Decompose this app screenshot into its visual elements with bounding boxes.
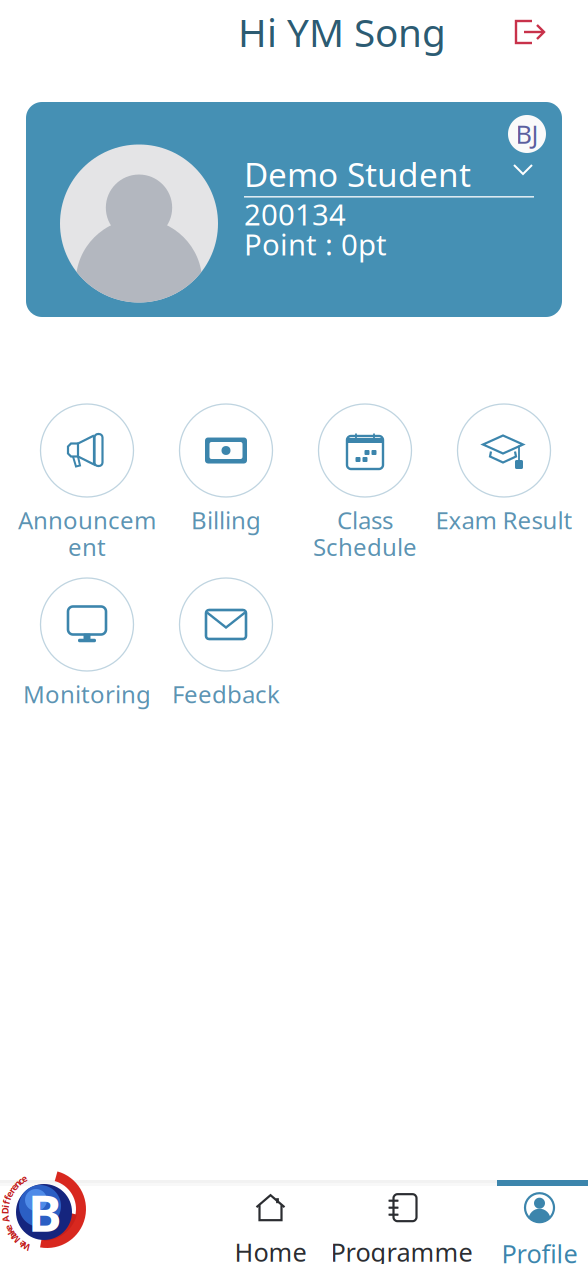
staticText: e (11, 1181, 17, 1193)
button[interactable]: Exam Result (434, 403, 573, 569)
button[interactable]: Home (205, 1180, 336, 1264)
staticText: f (4, 1196, 8, 1208)
button[interactable]: Announcem (17, 403, 156, 569)
staticText: Demo Student (244, 152, 471, 196)
button[interactable]: Feedback (156, 577, 295, 743)
button[interactable]: Programme (336, 1180, 467, 1264)
staticText: M (11, 1232, 20, 1245)
staticText (17, 1235, 19, 1248)
staticText: e (21, 1172, 27, 1185)
button[interactable]: Brand logo (0, 1180, 97, 1258)
staticText: e (6, 1188, 12, 1200)
button[interactable]: Monitoring (17, 577, 156, 743)
staticText: Schedule (313, 531, 417, 563)
staticText: f (6, 1192, 10, 1204)
staticText: c (18, 1175, 23, 1187)
staticText: A (3, 1213, 9, 1225)
staticText: Profile (501, 1237, 577, 1264)
staticText: 200134 (244, 195, 346, 234)
staticText: Exam Result (435, 504, 572, 536)
staticText: Billing (191, 504, 261, 536)
staticText: Class (337, 504, 393, 536)
staticText: Home (234, 1235, 306, 1264)
staticText: Point : 0pt (244, 225, 387, 264)
staticText: D (1, 1204, 8, 1217)
staticText: n (14, 1177, 20, 1190)
staticText: Hi YM Song (238, 6, 446, 58)
staticText: Feedback (172, 678, 280, 710)
staticText: a (10, 1229, 16, 1241)
staticText: B (28, 1178, 62, 1246)
staticText: e (19, 1238, 25, 1250)
button[interactable]: Log out (508, 13, 552, 51)
staticText: W (21, 1240, 30, 1253)
staticText: i (4, 1200, 7, 1212)
staticText: r (10, 1184, 14, 1196)
staticText: BJ (515, 117, 538, 151)
staticText: Announcem (18, 504, 156, 536)
staticText: k (7, 1225, 13, 1238)
staticText: e (5, 1221, 11, 1234)
staticText: Programme (330, 1235, 472, 1264)
staticText: ent (68, 531, 106, 563)
staticText: Monitoring (23, 678, 151, 710)
button[interactable]: Billing (156, 403, 295, 569)
staticText (4, 1209, 6, 1221)
staticText (6, 1217, 8, 1230)
button[interactable]: Profile (474, 1180, 588, 1264)
button[interactable]: Class (295, 403, 434, 569)
